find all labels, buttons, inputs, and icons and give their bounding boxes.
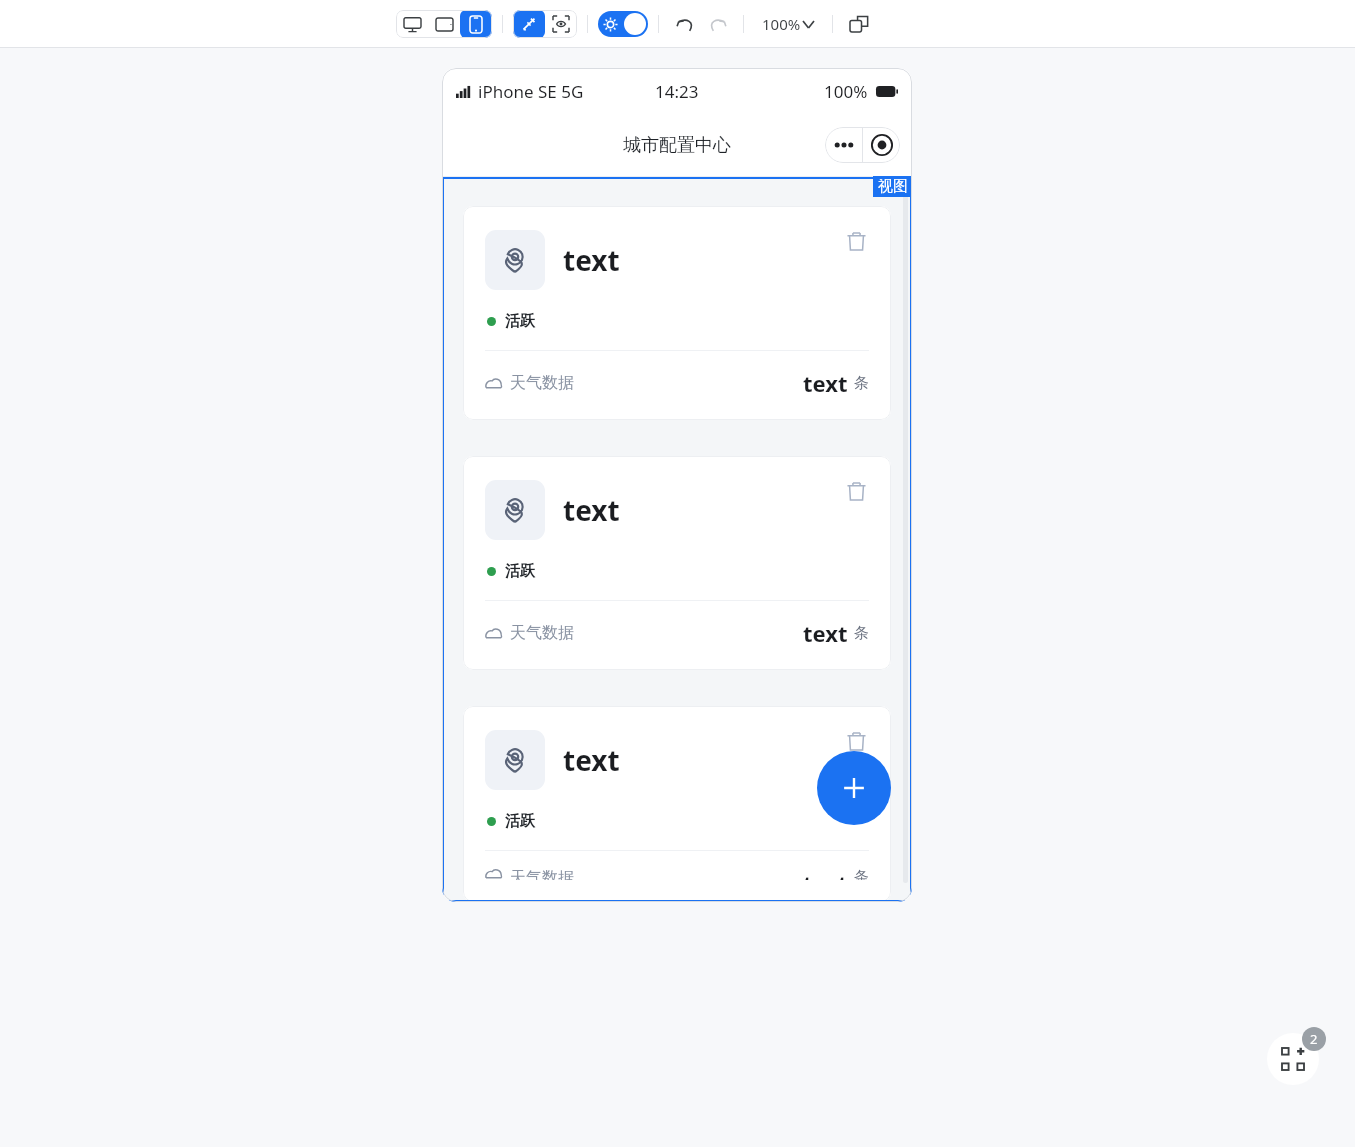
staticText: 100% bbox=[824, 80, 868, 103]
staticText: text bbox=[803, 618, 848, 648]
button[interactable]: Delete bbox=[839, 474, 873, 508]
button[interactable]: text bbox=[463, 456, 891, 670]
button[interactable]: Add city bbox=[817, 751, 891, 825]
staticText: 2 bbox=[1310, 1030, 1318, 1048]
button[interactable]: Close bbox=[863, 128, 900, 162]
staticText: text bbox=[563, 741, 620, 779]
button[interactable]: 视图 bbox=[873, 176, 912, 197]
button[interactable]: Edit bbox=[513, 10, 545, 38]
button[interactable]: More options bbox=[825, 128, 862, 162]
staticText: 条 bbox=[854, 868, 869, 880]
button[interactable]: Tablet preview bbox=[428, 10, 460, 38]
staticText: text bbox=[803, 368, 848, 398]
staticText: 条 bbox=[854, 624, 869, 643]
staticText: 14:23 bbox=[655, 80, 699, 103]
button[interactable]: Add component bbox=[1267, 1033, 1319, 1085]
button[interactable]: Undo bbox=[669, 10, 701, 38]
button[interactable]: Redo bbox=[701, 10, 733, 38]
staticText: 活跃 bbox=[505, 562, 535, 581]
staticText: text bbox=[803, 868, 848, 880]
staticText: text bbox=[563, 491, 620, 529]
button[interactable]: Export bbox=[843, 10, 875, 38]
button[interactable]: text bbox=[463, 706, 891, 902]
staticText: 活跃 bbox=[505, 312, 535, 331]
staticText: 视图 bbox=[878, 177, 908, 196]
button[interactable]: Delete bbox=[839, 724, 873, 758]
button[interactable]: Phone preview bbox=[460, 10, 492, 38]
staticText: 100% bbox=[762, 14, 801, 34]
staticText: text bbox=[563, 241, 620, 279]
button[interactable]: Desktop preview bbox=[396, 10, 428, 38]
button[interactable]: text bbox=[463, 206, 891, 420]
staticText: 城市配置中心 bbox=[623, 134, 731, 157]
staticText: 活跃 bbox=[505, 812, 535, 831]
staticText: 条 bbox=[854, 374, 869, 393]
button[interactable]: 100% bbox=[758, 12, 818, 36]
staticText: 天气数据 bbox=[510, 868, 574, 880]
button[interactable]: Theme toggle bbox=[598, 11, 648, 37]
button[interactable]: Inspect bbox=[545, 10, 577, 38]
staticText: 天气数据 bbox=[510, 623, 574, 643]
button[interactable]: Delete bbox=[839, 224, 873, 258]
staticText: 天气数据 bbox=[510, 373, 574, 393]
staticText: iPhone SE 5G bbox=[478, 80, 584, 103]
